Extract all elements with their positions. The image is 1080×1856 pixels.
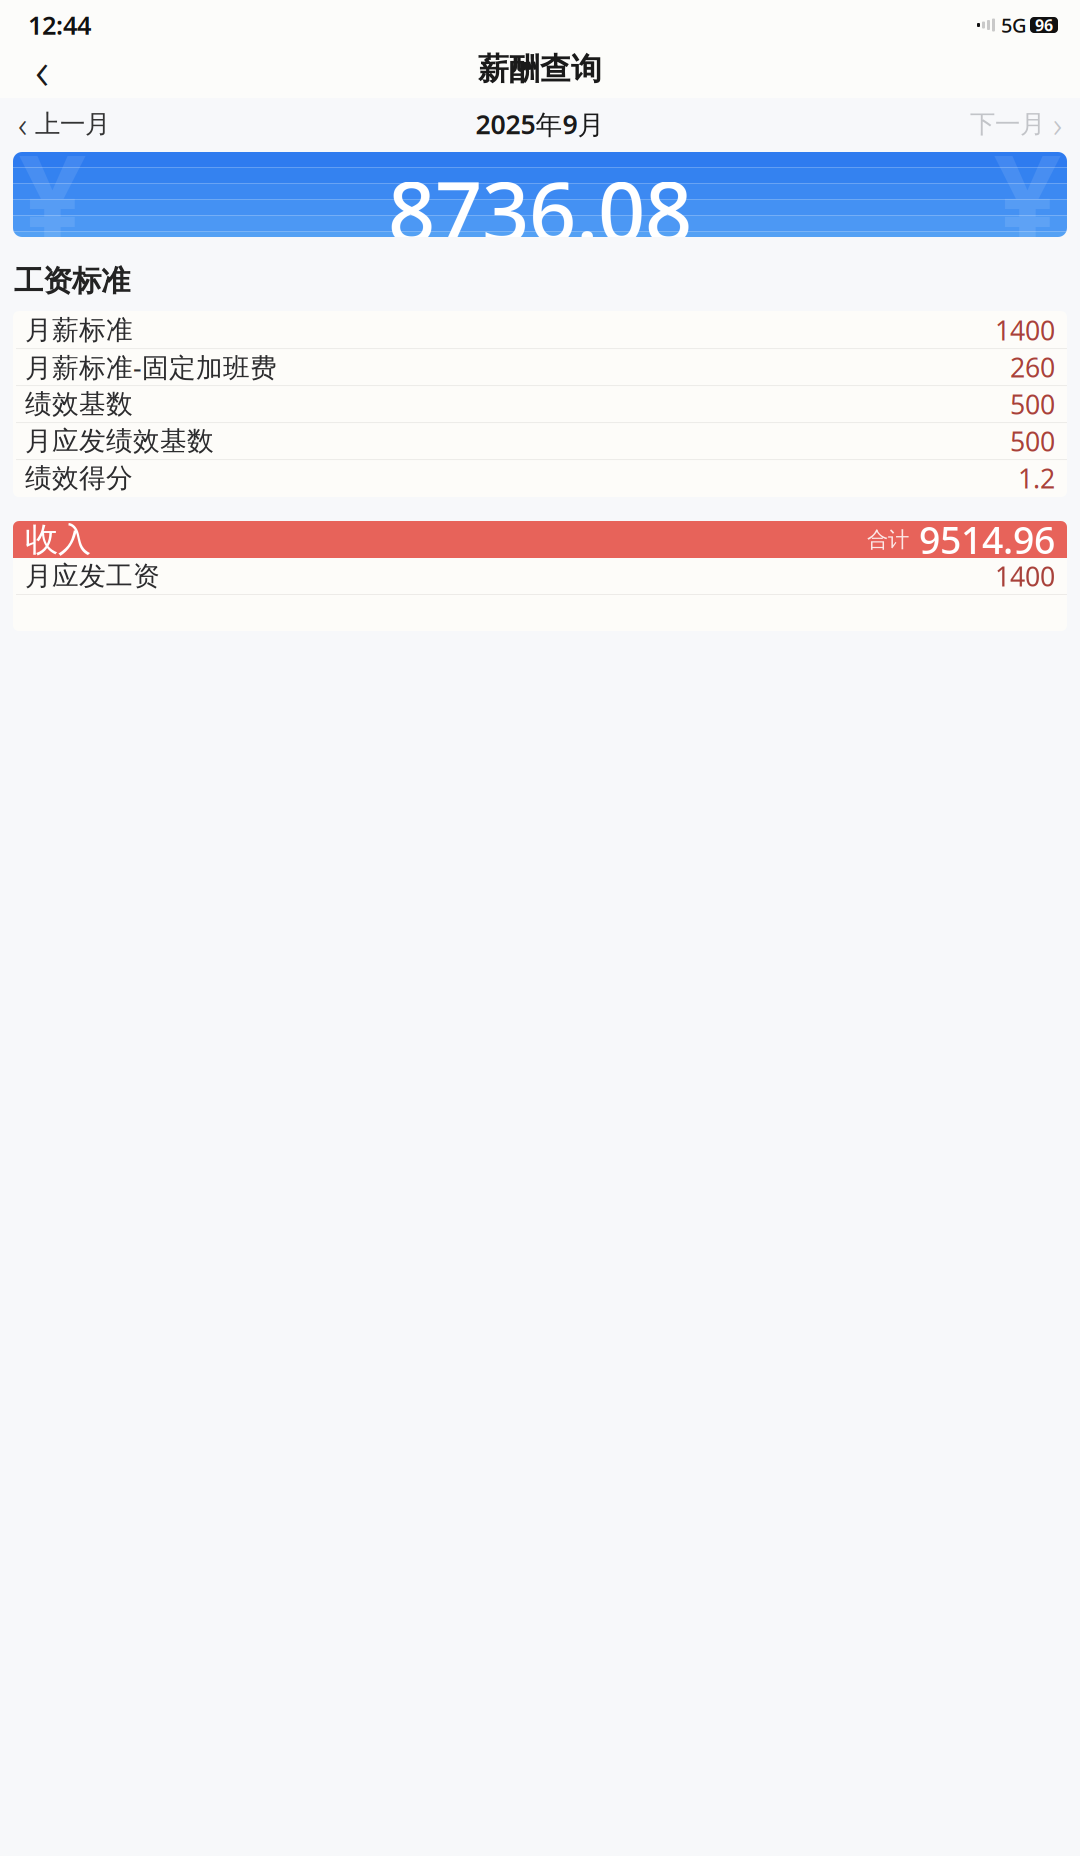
staticText: 1400 <box>995 312 1055 348</box>
staticText: 薪酬查询 <box>478 50 602 88</box>
staticText: 收入 <box>25 519 91 560</box>
staticText: 500 <box>1010 386 1055 422</box>
button[interactable]: 返回 <box>16 46 68 92</box>
staticText: 260 <box>1010 349 1055 385</box>
staticText: 月应发绩效基数 <box>25 425 214 457</box>
staticText: 月薪标准-固定加班费 <box>25 349 277 385</box>
staticText: 1400 <box>995 558 1055 594</box>
staticText: › <box>1053 101 1062 147</box>
staticText: 下一月 <box>970 108 1045 139</box>
staticText: 500 <box>1010 423 1055 459</box>
staticText: ¥ <box>19 117 86 272</box>
staticText: ¥ <box>994 117 1061 272</box>
staticText: 8736.08 <box>388 155 692 265</box>
staticText: 1.2 <box>1018 460 1055 496</box>
staticText: 合计 <box>867 526 909 553</box>
button[interactable]: 月应发绩效基数 <box>13 423 1067 459</box>
button[interactable]: ‹ <box>14 93 114 155</box>
button[interactable]: 下一月 <box>966 93 1066 155</box>
staticText: 上一月 <box>35 108 110 139</box>
staticText: 绩效基数 <box>25 388 133 420</box>
staticText: 工资标准 <box>14 263 130 299</box>
staticText: ‹ <box>18 101 27 147</box>
staticText: 96 <box>1035 14 1053 36</box>
button[interactable]: 月应发工资 <box>13 558 1067 594</box>
staticText: ‹ <box>35 34 49 104</box>
staticText: 月薪标准 <box>25 314 133 346</box>
button[interactable]: 绩效基数 <box>13 386 1067 422</box>
staticText: 9514.96 <box>919 515 1055 564</box>
staticText: 绩效得分 <box>25 462 133 494</box>
button[interactable]: 月薪标准-固定加班费 <box>13 349 1067 385</box>
staticText: 2025年9月 <box>475 106 604 142</box>
button[interactable]: 月薪标准 <box>13 312 1067 348</box>
staticText: 实发工资 <box>492 124 588 153</box>
staticText: 5G <box>1001 12 1027 38</box>
staticText: 月应发工资 <box>25 560 160 592</box>
staticText: 12:44 <box>28 8 91 42</box>
button[interactable]: 绩效得分 <box>13 460 1067 496</box>
